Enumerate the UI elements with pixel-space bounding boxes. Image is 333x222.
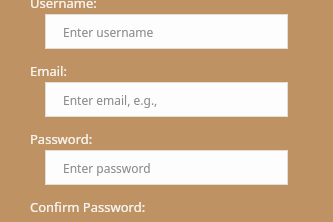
staticText: Enter username bbox=[63, 24, 154, 40]
staticText: Enter password bbox=[63, 160, 151, 176]
staticText: Username: bbox=[30, 0, 97, 12]
button[interactable]: Enter username bbox=[45, 14, 288, 49]
staticText: Password: bbox=[30, 130, 93, 148]
staticText: Enter email, e.g., someone@example.com bbox=[63, 92, 288, 108]
button[interactable]: Enter password bbox=[45, 150, 288, 185]
button[interactable]: Enter email, e.g., someone@example.com bbox=[45, 82, 288, 117]
other: Registration form bbox=[0, 0, 333, 222]
staticText: Confirm Password: bbox=[30, 198, 146, 216]
staticText: Email: bbox=[30, 62, 67, 80]
